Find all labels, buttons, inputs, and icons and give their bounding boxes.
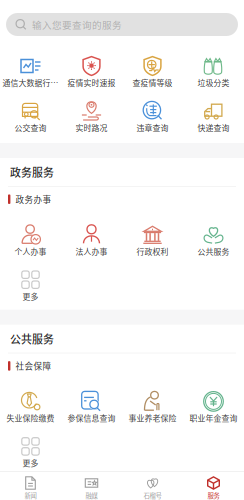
button[interactable]: 通信大数据行… [0,55,61,92]
button[interactable]: 垃圾分类 [183,55,244,92]
staticText: 失业保险缴费 [6,412,54,424]
staticText: 融媒 [85,491,97,500]
button[interactable]: 行政权利 [122,224,183,261]
staticText: 更多 [22,457,38,469]
staticText: 个人办事 [14,245,46,257]
button[interactable]: 融媒 [61,476,122,500]
staticText: 事业养老保险 [128,412,176,424]
staticText: 服务 [207,491,219,500]
staticText: 石榴号 [143,491,161,500]
staticText: 输入您要查询的服务 [32,17,122,31]
staticText: 职业年金查询 [189,412,237,424]
staticText: 参保信息查询 [67,412,115,424]
button[interactable]: 石榴号 [122,476,183,500]
staticText: 更多 [22,290,38,302]
button[interactable]: 违章查询 [122,100,183,137]
staticText: 垃圾分类 [197,77,229,88]
staticText: 社会保障 [15,360,51,372]
staticText: 政务办事 [15,193,51,205]
staticText: 法人办事 [75,245,107,257]
staticText: 公共服务 [197,245,229,257]
staticText: 实时路况 [75,122,107,133]
staticText: 新闻 [24,491,36,500]
staticText: 快递查询 [197,122,229,133]
button[interactable]: 疫情实时速报 [61,55,122,92]
button[interactable]: 查疫情等级 [122,55,183,92]
staticText: 公交查询 [14,122,46,133]
button[interactable]: 参保信息查询 [61,390,122,427]
button[interactable]: 失业保险缴费 [0,390,61,427]
button[interactable]: 职业年金查询 [183,390,244,427]
button[interactable]: 新闻 [0,476,61,500]
staticText: 疫情实时速报 [67,77,115,88]
button[interactable]: 快递查询 [183,100,244,137]
button[interactable]: 更多 [0,435,61,472]
button[interactable]: 公交查询 [0,100,61,137]
button[interactable]: 更多 [0,269,61,306]
staticText: 政务服务 [10,164,54,180]
button[interactable]: 事业养老保险 [122,390,183,427]
staticText: 通信大数据行… [2,77,58,88]
button[interactable]: 法人办事 [61,224,122,261]
staticText: 查疫情等级 [132,77,172,88]
button[interactable]: 个人办事 [0,224,61,261]
button[interactable]: 服务 [183,476,244,500]
button[interactable]: 实时路况 [61,100,122,137]
button[interactable]: 公共服务 [183,224,244,261]
staticText: 违章查询 [136,122,168,133]
staticText: 行政权利 [136,245,168,257]
staticText: 公共服务 [10,331,54,347]
